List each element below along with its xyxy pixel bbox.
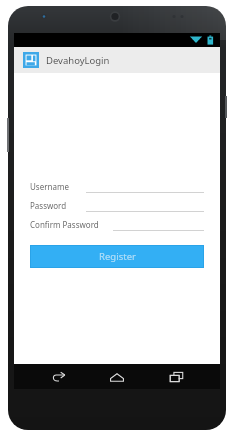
- button[interactable]: Home: [103, 367, 131, 387]
- button[interactable]: Confirm Password: [30, 218, 204, 231]
- staticText: Username: [30, 181, 86, 192]
- button[interactable]: Username: [30, 180, 204, 193]
- staticText: Password: [30, 200, 86, 211]
- button[interactable]: Recent apps: [162, 367, 190, 387]
- staticText: DevahoyLogin: [46, 54, 110, 67]
- staticText: Confirm Password: [30, 219, 113, 230]
- button[interactable]: Back: [45, 367, 73, 387]
- staticText: Register: [99, 250, 136, 263]
- button[interactable]: Register: [31, 246, 203, 267]
- button[interactable]: Password: [30, 199, 204, 212]
- button[interactable]: App icon: [23, 52, 39, 68]
